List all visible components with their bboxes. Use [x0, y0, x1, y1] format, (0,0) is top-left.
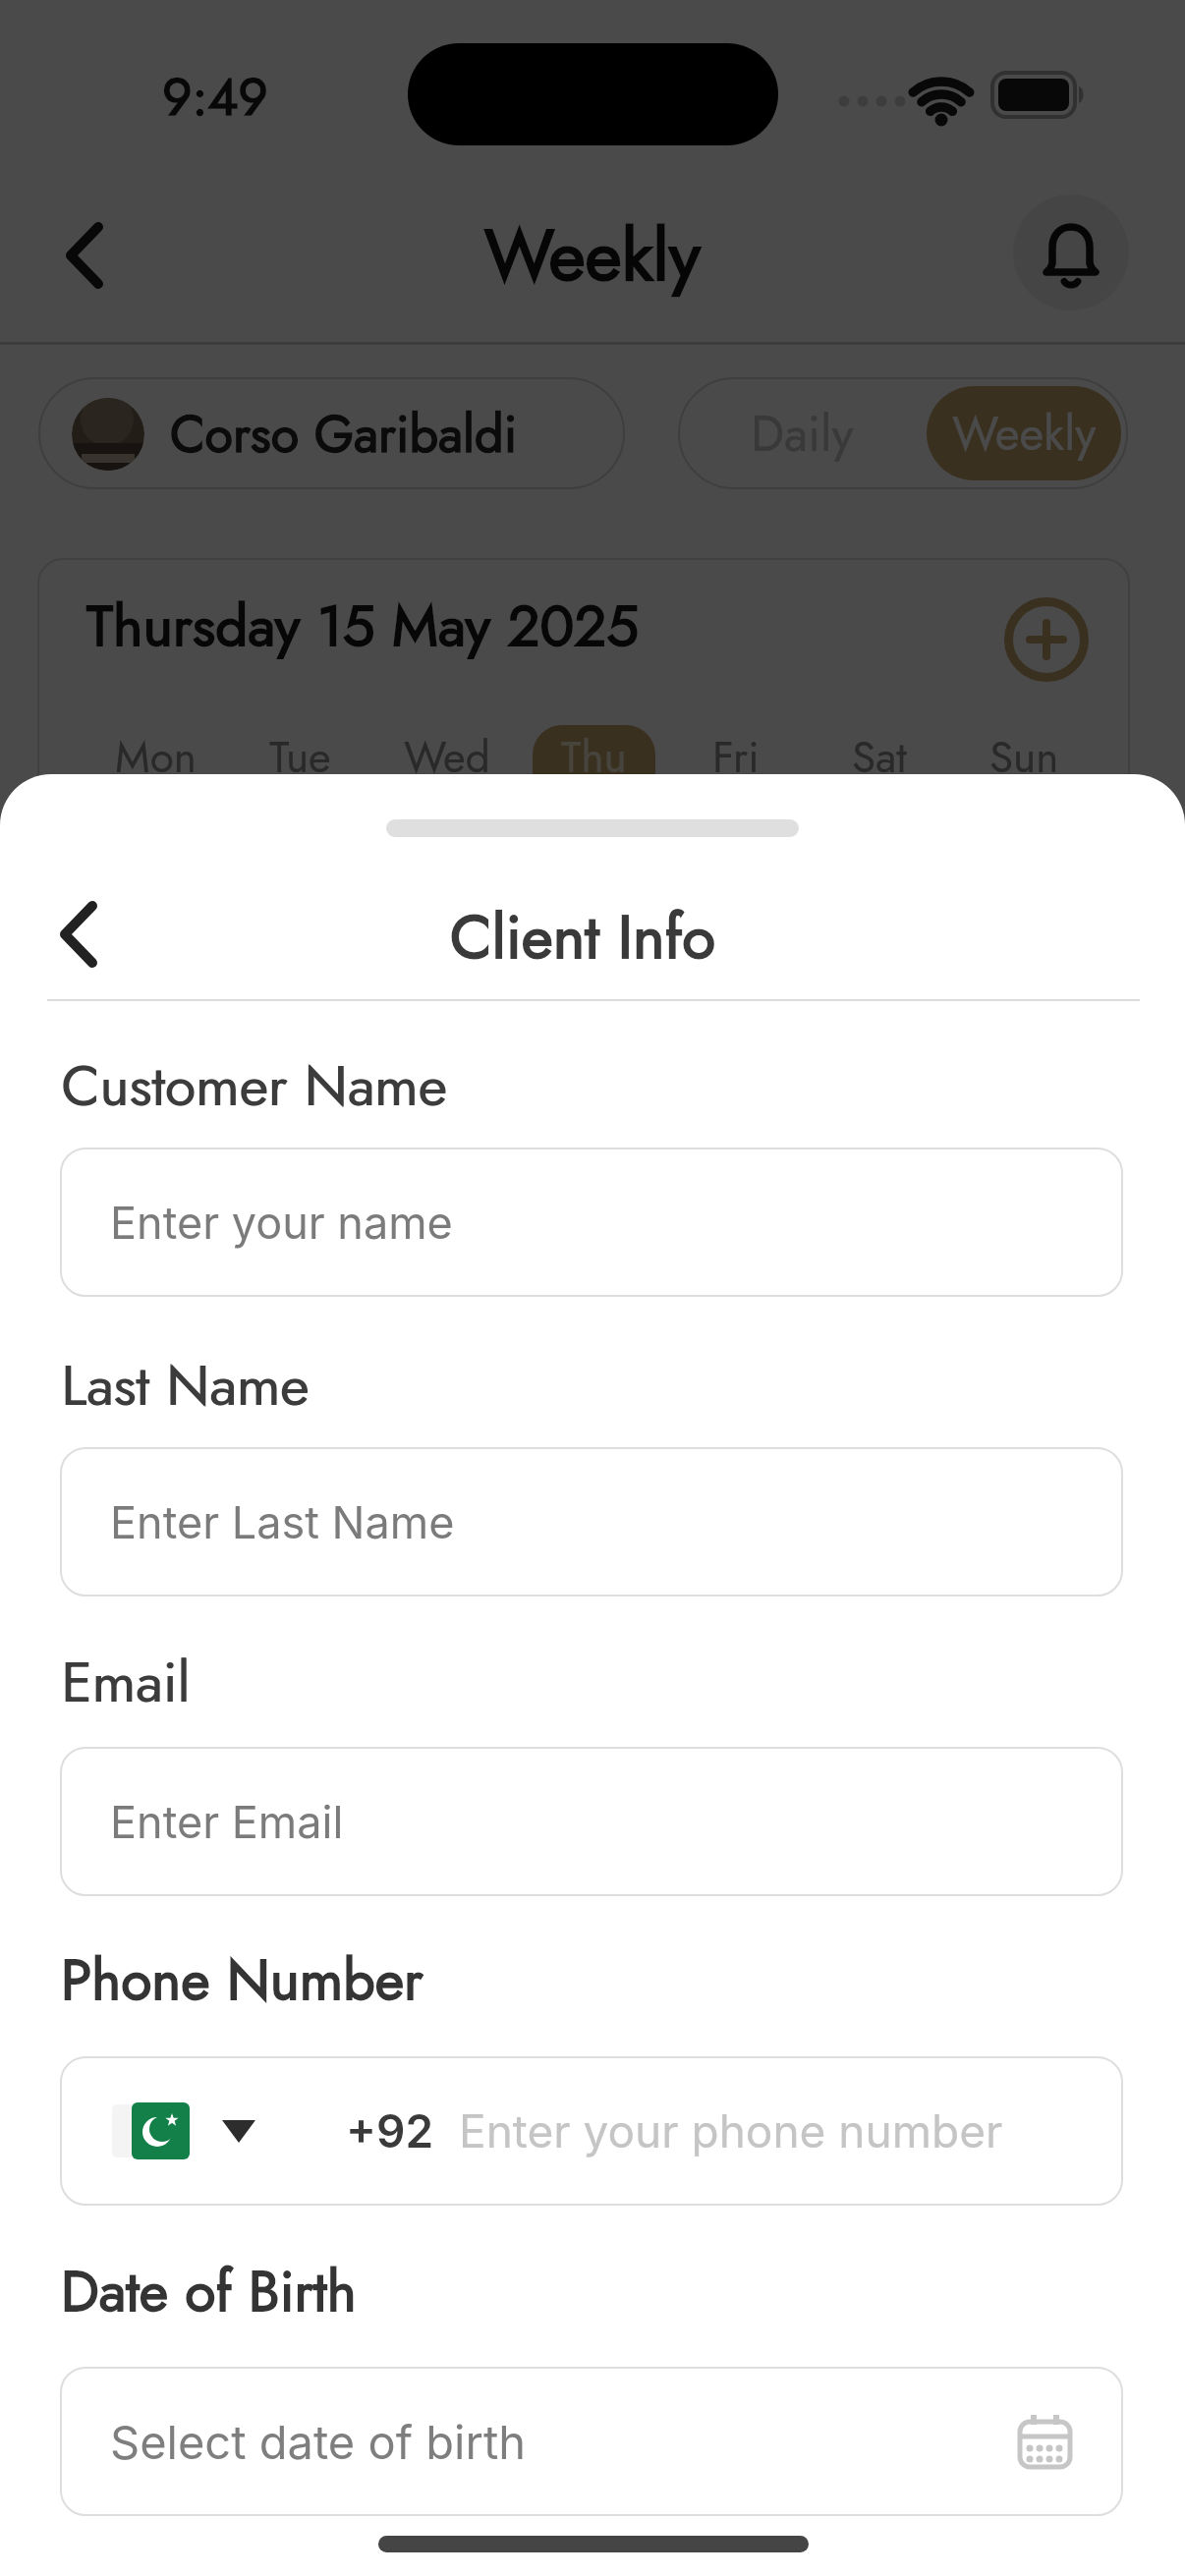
staticText: Wed: [404, 726, 490, 789]
staticText: Thursday 15 May 2025: [86, 585, 639, 667]
staticText: Customer Name: [61, 1045, 447, 1126]
button[interactable]: Corso Garibaldi: [38, 377, 625, 489]
staticText: 9:49: [162, 59, 268, 135]
button[interactable]: [1004, 597, 1089, 682]
staticText: Fri: [712, 726, 760, 789]
staticText: Enter Last Name: [110, 1495, 455, 1548]
button[interactable]: Weekly: [927, 386, 1121, 480]
staticText: Sat: [852, 726, 907, 789]
button[interactable]: [63, 221, 106, 290]
staticText: Email: [61, 1642, 191, 1722]
staticText: Weekly: [484, 204, 701, 307]
button[interactable]: Enter Email: [60, 1747, 1123, 1896]
staticText: Sun: [989, 726, 1059, 789]
staticText: Last Name: [61, 1345, 310, 1426]
staticText: Date of Birth: [61, 2251, 357, 2331]
button[interactable]: [1013, 195, 1129, 310]
staticText: Select date of birth: [110, 2414, 527, 2470]
button[interactable]: [57, 902, 100, 969]
staticText: Email: [62, 1642, 192, 1722]
staticText: Client Info: [450, 893, 716, 981]
staticText: Phone Number: [61, 1939, 423, 2020]
staticText: Weekly: [952, 400, 1097, 468]
staticText: Enter your phone number: [459, 2103, 1003, 2158]
staticText: Thu: [561, 726, 627, 789]
button[interactable]: Enter your name: [60, 1148, 1123, 1297]
button[interactable]: Enter Last Name: [60, 1447, 1123, 1596]
button[interactable]: +92: [60, 2056, 1123, 2206]
staticText: Customer Name: [62, 1045, 448, 1126]
staticText: Daily: [751, 398, 854, 469]
staticText: Enter Email: [110, 1795, 344, 1848]
staticText: Mon: [115, 726, 197, 789]
button[interactable]: Select date of birth: [60, 2367, 1123, 2516]
staticText: Corso Garibaldi: [170, 397, 518, 471]
staticText: Enter your name: [110, 1196, 453, 1249]
button[interactable]: Daily: [678, 377, 927, 489]
staticText: Last Name: [62, 1345, 310, 1426]
staticText: +92: [346, 2103, 434, 2158]
staticText: Tue: [269, 726, 331, 789]
